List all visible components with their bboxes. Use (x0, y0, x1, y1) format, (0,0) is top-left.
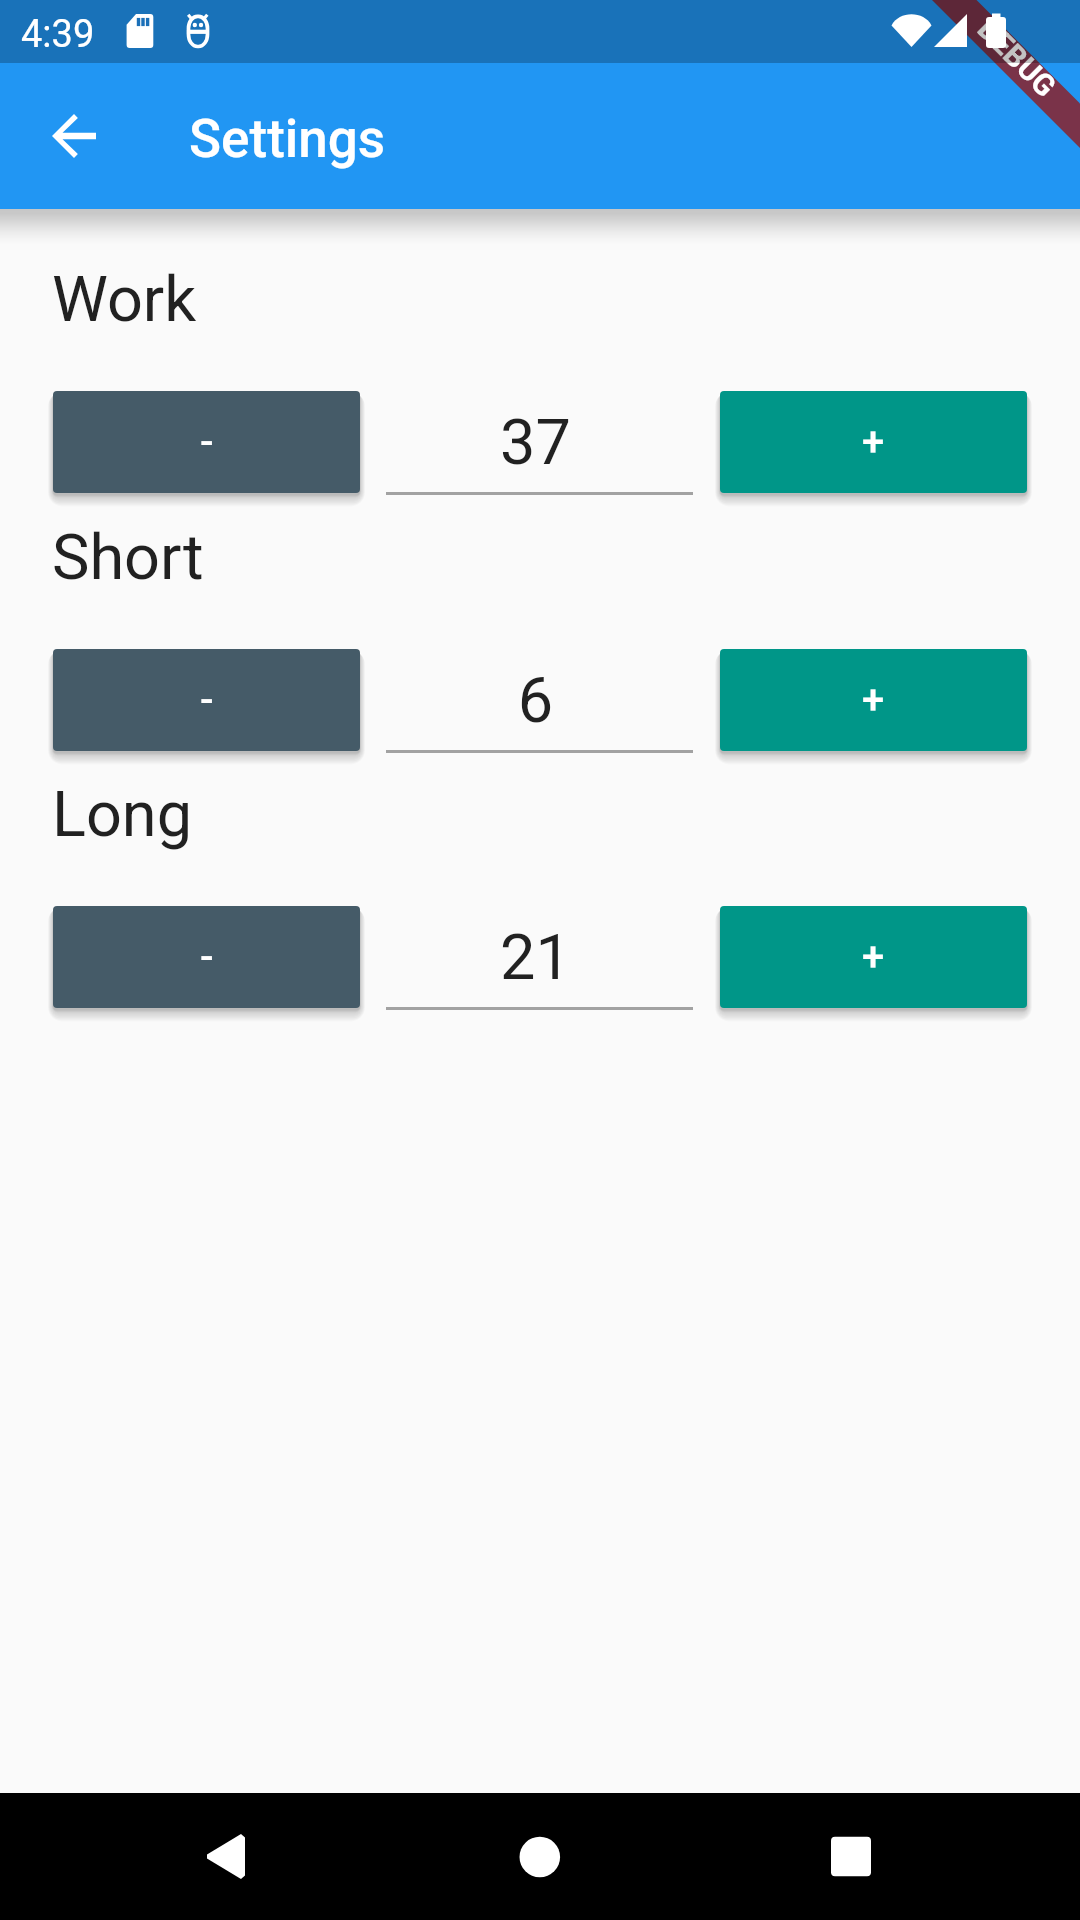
button[interactable]: Home (485, 1793, 595, 1920)
staticText: Short (52, 521, 204, 595)
staticText: DEBUG (971, 11, 1063, 104)
staticText: - (200, 677, 214, 724)
staticText: + (862, 419, 885, 466)
staticText: 4:39 (21, 12, 95, 57)
staticText: - (200, 419, 214, 466)
staticText: + (862, 934, 885, 981)
button[interactable]: + (720, 649, 1027, 751)
staticText: + (862, 677, 885, 724)
button[interactable]: - (53, 391, 360, 493)
staticText: 6 (382, 664, 689, 738)
staticText: 37 (382, 406, 689, 480)
staticText: Long (52, 778, 193, 852)
button[interactable]: Back (25, 87, 123, 185)
staticText: 21 (382, 921, 689, 995)
button[interactable]: + (720, 906, 1027, 1008)
button[interactable]: + (720, 391, 1027, 493)
button[interactable]: Back (190, 1793, 300, 1920)
button[interactable]: Recent apps (795, 1793, 905, 1920)
staticText: Settings (189, 108, 386, 170)
button[interactable]: - (53, 649, 360, 751)
button[interactable]: - (53, 906, 360, 1008)
staticText: - (200, 934, 214, 981)
staticText: Work (52, 263, 197, 337)
